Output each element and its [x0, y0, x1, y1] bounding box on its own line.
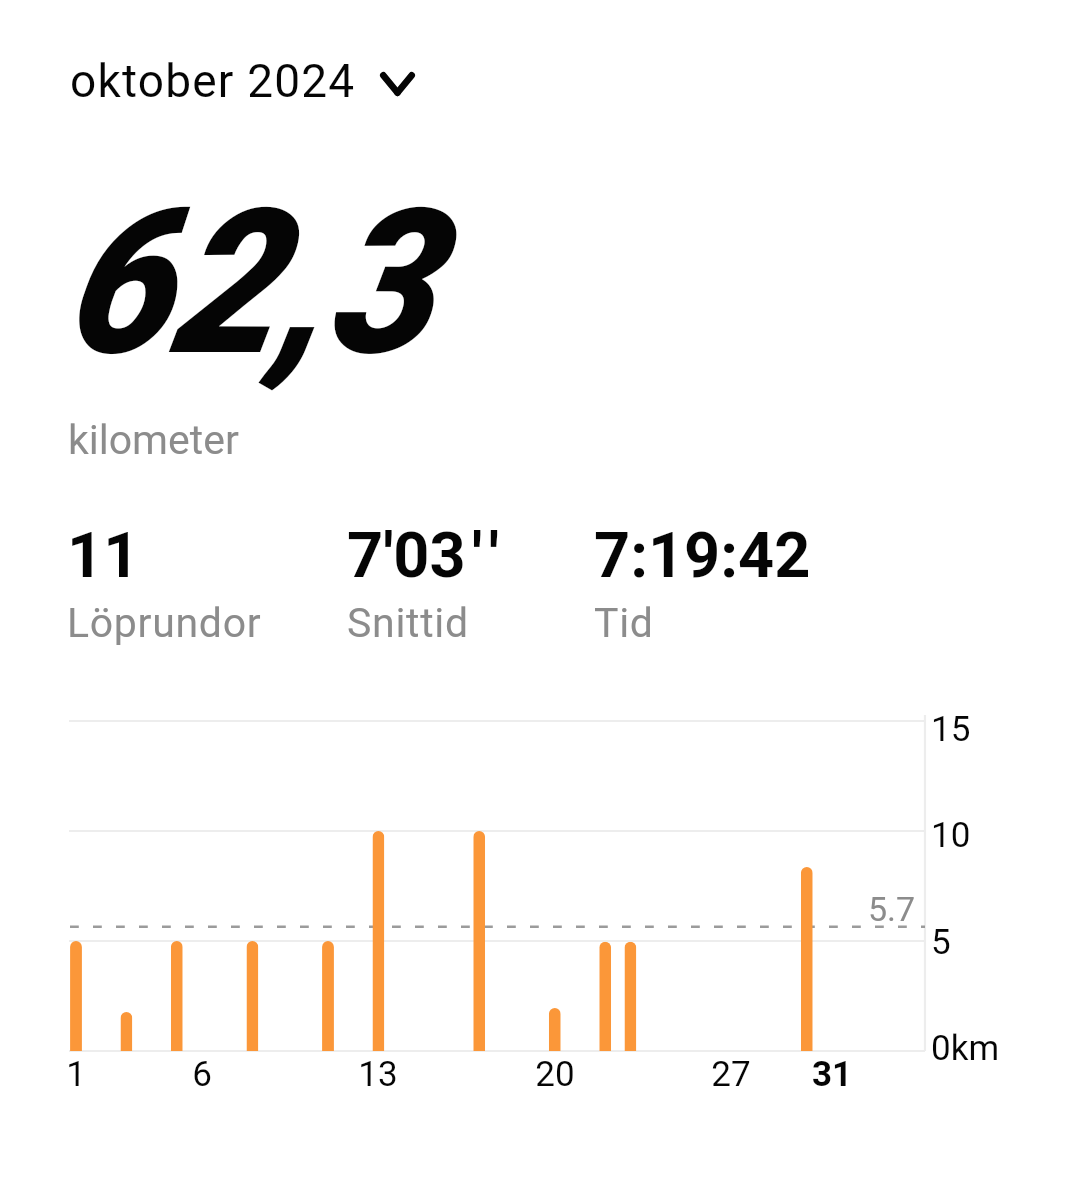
button[interactable]: 11 — [55, 519, 305, 659]
staticText: oktober 2024 — [70, 54, 356, 108]
staticText: 5 — [931, 922, 951, 963]
staticText: 20 — [515, 1054, 595, 1095]
button[interactable]: 7'03 ' ' — [335, 519, 585, 659]
staticText: Löprundor — [67, 599, 262, 647]
staticText: 0km — [931, 1028, 1000, 1069]
staticText: 6 — [162, 1054, 242, 1095]
staticText: 13 — [338, 1054, 418, 1095]
staticText: Tid — [594, 599, 654, 647]
staticText: 15 — [931, 709, 971, 750]
staticText: Snittid — [347, 599, 469, 647]
staticText: 11 — [67, 519, 140, 593]
button[interactable]: oktober 2024, välj månad — [46, 45, 446, 117]
staticText: 31 — [792, 1054, 872, 1095]
staticText: 7'03 ' ' — [347, 519, 499, 593]
staticText: kilometer — [68, 416, 239, 464]
staticText: 7:19:42 — [594, 519, 811, 593]
staticText: 5.7 — [868, 889, 916, 929]
staticText: 62,3 — [63, 166, 433, 401]
staticText: 27 — [691, 1054, 771, 1095]
staticText: 1 — [36, 1054, 116, 1095]
staticText: 10 — [931, 815, 971, 856]
button[interactable]: 7:19:42 — [582, 519, 832, 659]
